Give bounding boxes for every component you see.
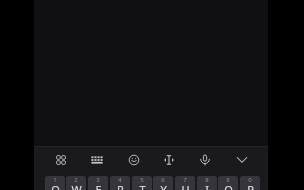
staticText: I [205, 182, 209, 190]
staticText: E [95, 182, 102, 190]
button[interactable]: 0 [240, 176, 260, 190]
staticText: U [181, 182, 190, 190]
staticText: T [139, 182, 146, 190]
button[interactable]: 6 [153, 176, 173, 190]
staticText: 2 [74, 176, 78, 184]
button[interactable]: 1 [45, 176, 65, 190]
button[interactable]: 7 [175, 176, 195, 190]
staticText: P [247, 182, 254, 190]
staticText: R [117, 182, 124, 190]
staticText: 8 [205, 176, 209, 184]
button[interactable]: Keyboard [84, 147, 110, 173]
button[interactable]: 9 [218, 176, 238, 190]
button[interactable]: 2 [66, 176, 86, 190]
staticText: 4 [118, 176, 122, 184]
button[interactable]: 4 [110, 176, 130, 190]
staticText: O [224, 182, 233, 190]
staticText: Q [51, 182, 60, 190]
button[interactable]: 5 [132, 176, 152, 190]
button[interactable]: 3 [88, 176, 108, 190]
staticText: 0 [248, 176, 252, 184]
staticText: 3 [96, 176, 100, 184]
button[interactable]: Hide keyboard [229, 147, 255, 173]
staticText: 7 [183, 176, 187, 184]
staticText: 5 [140, 176, 144, 184]
staticText: W [71, 182, 82, 190]
button[interactable]: Apps [48, 147, 74, 173]
button[interactable]: Text editing [156, 147, 182, 173]
button[interactable]: Voice input [192, 147, 218, 173]
button[interactable]: 8 [197, 176, 217, 190]
staticText: 1 [53, 176, 57, 184]
staticText: 9 [226, 176, 230, 184]
staticText: Y [160, 182, 167, 190]
button[interactable]: Emoji [121, 147, 147, 173]
staticText: 6 [161, 176, 165, 184]
